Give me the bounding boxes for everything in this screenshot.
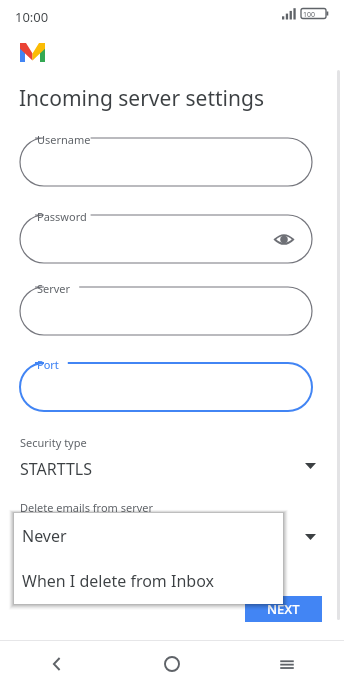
staticText: 100 — [303, 10, 316, 20]
staticText: NEXT — [267, 600, 300, 618]
staticText: Delete emails from server — [20, 500, 154, 515]
button[interactable]: Password — [20, 215, 312, 263]
button[interactable]: Open dropdown — [299, 526, 321, 548]
staticText: Username — [37, 132, 91, 147]
button[interactable]: Never — [14, 513, 283, 558]
button[interactable]: Back — [0, 640, 114, 688]
staticText: Never — [22, 525, 67, 547]
button[interactable]: Port — [20, 363, 312, 411]
button[interactable]: Username — [20, 138, 312, 186]
button[interactable]: Server — [20, 287, 312, 335]
staticText: Incoming server settings — [19, 84, 264, 113]
staticText: STARTTLS — [20, 458, 93, 480]
staticText: Password — [37, 209, 87, 224]
staticText: Server — [37, 281, 71, 296]
button[interactable]: Home — [114, 640, 229, 688]
button[interactable]: Security type — [20, 435, 310, 480]
staticText: 10:00 — [15, 8, 49, 26]
button[interactable]: Show password — [271, 226, 297, 252]
staticText: When I delete from Inbox — [22, 570, 214, 592]
button[interactable]: When I delete from Inbox — [14, 558, 283, 604]
staticText: Port — [37, 357, 59, 372]
button[interactable]: Recents — [229, 640, 344, 688]
staticText: Security type — [20, 435, 87, 450]
button[interactable]: NEXT — [245, 596, 322, 622]
button[interactable]: Open dropdown — [299, 455, 321, 477]
